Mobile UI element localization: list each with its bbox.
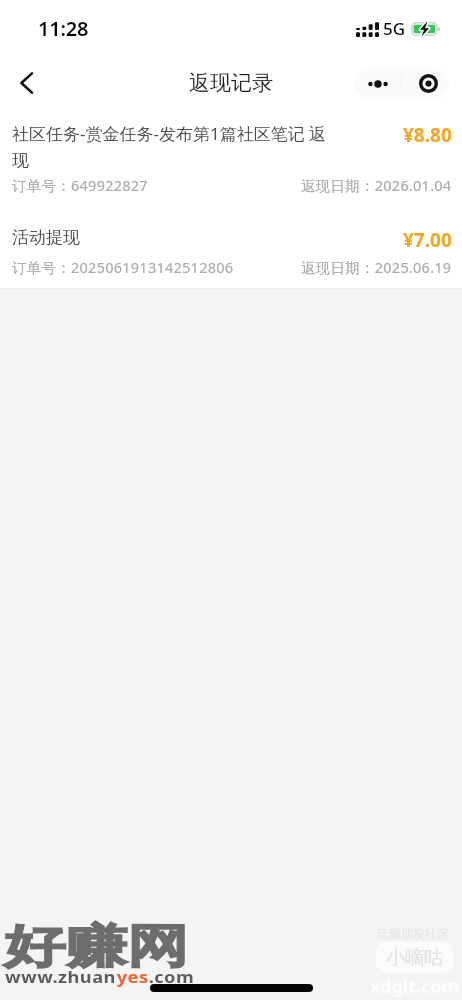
staticText: 返现记录 xyxy=(189,70,273,96)
staticText: 订单号：2025061913142512806 xyxy=(12,257,234,277)
staticText: 11:28 xyxy=(38,15,89,42)
staticText: 社区任务-赏金任务-发布第1篇社区笔记 返现 xyxy=(12,122,334,171)
staticText: 5G xyxy=(383,17,406,40)
staticText: 订单号：649922827 xyxy=(12,175,148,195)
staticText: www.zhuan xyxy=(5,966,117,988)
staticText: 返现日期：2025.06.19 xyxy=(301,257,452,277)
staticText: 好赚网 xyxy=(4,918,188,975)
staticText: ¥7.00 xyxy=(403,227,452,253)
button[interactable]: 社区任务-赏金任务-发布第1篇社区笔记 返现 xyxy=(0,110,462,215)
staticText: ¥8.80 xyxy=(403,122,452,148)
staticText: 活动提现 xyxy=(12,227,334,248)
button[interactable]: Back xyxy=(4,59,52,107)
staticText: yes xyxy=(117,966,149,988)
staticText: 小嘀咕 xyxy=(386,946,443,970)
staticText: 返现日期：2026.01.04 xyxy=(301,175,452,195)
button[interactable]: Close mini program xyxy=(402,68,449,99)
button[interactable]: 活动提现 xyxy=(0,215,462,288)
button[interactable]: More options xyxy=(355,68,401,99)
staticText: xdglt.com xyxy=(370,974,460,999)
staticText: .com xyxy=(149,966,194,988)
staticText: 玩赚朋友社区 xyxy=(377,926,449,941)
